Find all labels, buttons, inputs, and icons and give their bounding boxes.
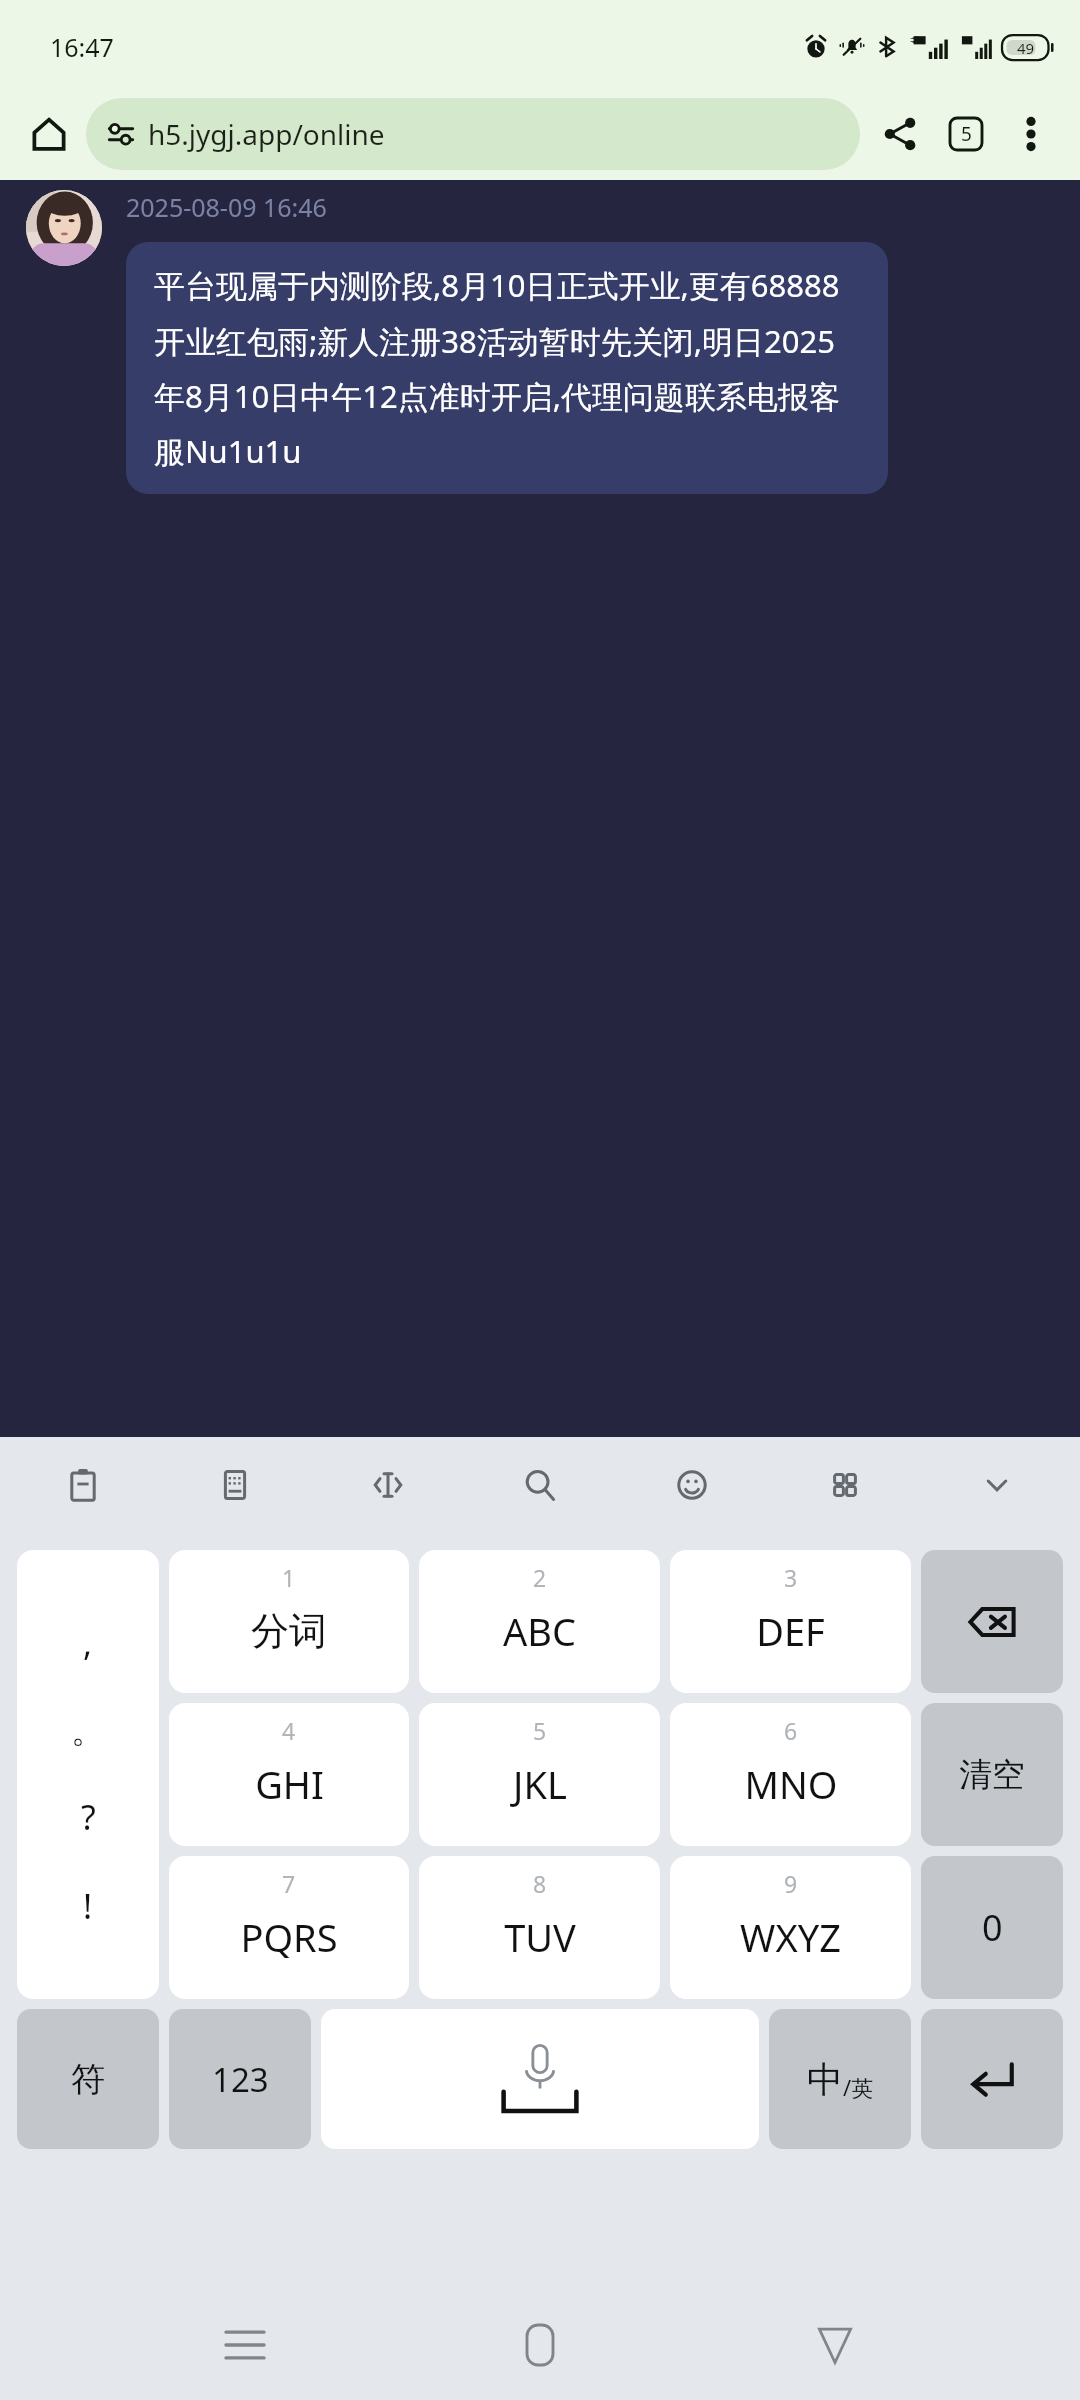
staticText: TUV xyxy=(504,1911,576,1963)
button[interactable]: 7 xyxy=(169,1856,409,1999)
staticText: GHI xyxy=(255,1758,324,1810)
staticText: 16:47 xyxy=(50,30,114,64)
button[interactable]: 清空 xyxy=(921,1703,1063,1846)
button[interactable]: 0 xyxy=(921,1856,1063,1999)
button[interactable]: 1 xyxy=(169,1550,409,1693)
button[interactable]: Enter xyxy=(921,2009,1063,2149)
staticText: JKL xyxy=(513,1758,567,1810)
staticText: 0 xyxy=(982,1903,1003,1952)
staticText: 49 xyxy=(1017,38,1035,58)
button[interactable]: 平台现属于内测阶段,8月10日正式开业,更有68888开业红包雨;新人注册38活… xyxy=(126,242,888,494)
button[interactable]: 4 xyxy=(169,1703,409,1846)
button[interactable]: Emoji xyxy=(653,1446,731,1524)
button[interactable]: Space, voice input xyxy=(321,2009,759,2149)
button[interactable]: Share xyxy=(870,104,930,164)
staticText: ? xyxy=(81,1794,96,1840)
staticText: 分词 xyxy=(251,1607,327,1655)
button[interactable]: 123 xyxy=(169,2009,311,2149)
button[interactable]: Hide keyboard xyxy=(958,1446,1036,1524)
button[interactable]: 2 xyxy=(419,1550,660,1693)
staticText: 7 xyxy=(282,1868,296,1899)
staticText: /英 xyxy=(843,2072,874,2102)
staticText: 1 xyxy=(282,1562,296,1593)
button[interactable]: h5.jygj.app/online xyxy=(86,98,860,170)
staticText: 2025-08-09 16:46 xyxy=(126,190,327,224)
staticText: MNO xyxy=(744,1758,838,1810)
staticText: 9 xyxy=(784,1868,798,1899)
button[interactable]: 中 xyxy=(769,2009,911,2149)
staticText: , xyxy=(83,1620,93,1666)
staticText: 符 xyxy=(71,2058,105,2101)
staticText: 2 xyxy=(533,1562,547,1593)
button[interactable]: Back xyxy=(785,2295,885,2395)
button[interactable]: Clipboard xyxy=(44,1446,122,1524)
staticText: 中 xyxy=(807,2057,843,2102)
staticText: PQRS xyxy=(240,1911,338,1963)
button[interactable]: 8 xyxy=(419,1856,660,1999)
button[interactable]: Avatar xyxy=(26,190,102,266)
staticText: 平台现属于内测阶段,8月10日正式开业,更有68888开业红包雨;新人注册38活… xyxy=(154,264,860,472)
button[interactable]: 符 xyxy=(17,2009,159,2149)
button[interactable]: Recent apps xyxy=(195,2295,295,2395)
staticText: DEF xyxy=(756,1605,825,1657)
staticText: 。 xyxy=(71,1709,105,1752)
button[interactable]: Home xyxy=(490,2295,590,2395)
button[interactable]: Backspace xyxy=(921,1550,1063,1693)
button[interactable]: Home xyxy=(20,105,78,163)
staticText: 4 xyxy=(282,1715,296,1746)
button[interactable]: 9 xyxy=(670,1856,911,1999)
staticText: 5 xyxy=(533,1715,547,1746)
button[interactable]: 3 xyxy=(670,1550,911,1693)
button[interactable]: Apps xyxy=(806,1446,884,1524)
staticText: 8 xyxy=(533,1868,547,1899)
button[interactable]: 6 xyxy=(670,1703,911,1846)
staticText: 清空 xyxy=(959,1754,1025,1796)
staticText: ! xyxy=(83,1883,93,1929)
staticText: ABC xyxy=(503,1605,576,1657)
staticText: 3 xyxy=(784,1562,798,1593)
staticText: h5.jygj.app/online xyxy=(148,115,385,153)
staticText: 5 xyxy=(961,121,972,147)
button[interactable]: , xyxy=(17,1550,159,1999)
button[interactable]: 5 xyxy=(419,1703,660,1846)
button[interactable]: Search xyxy=(501,1446,579,1524)
staticText: 123 xyxy=(212,2057,269,2102)
button[interactable]: Move cursor xyxy=(349,1446,427,1524)
staticText: WXYZ xyxy=(740,1911,841,1963)
button[interactable]: More options xyxy=(1002,105,1060,163)
button[interactable]: Tabs, 5 open xyxy=(936,104,996,164)
staticText: 6 xyxy=(784,1715,798,1746)
button[interactable]: Keyboard layout xyxy=(196,1446,274,1524)
